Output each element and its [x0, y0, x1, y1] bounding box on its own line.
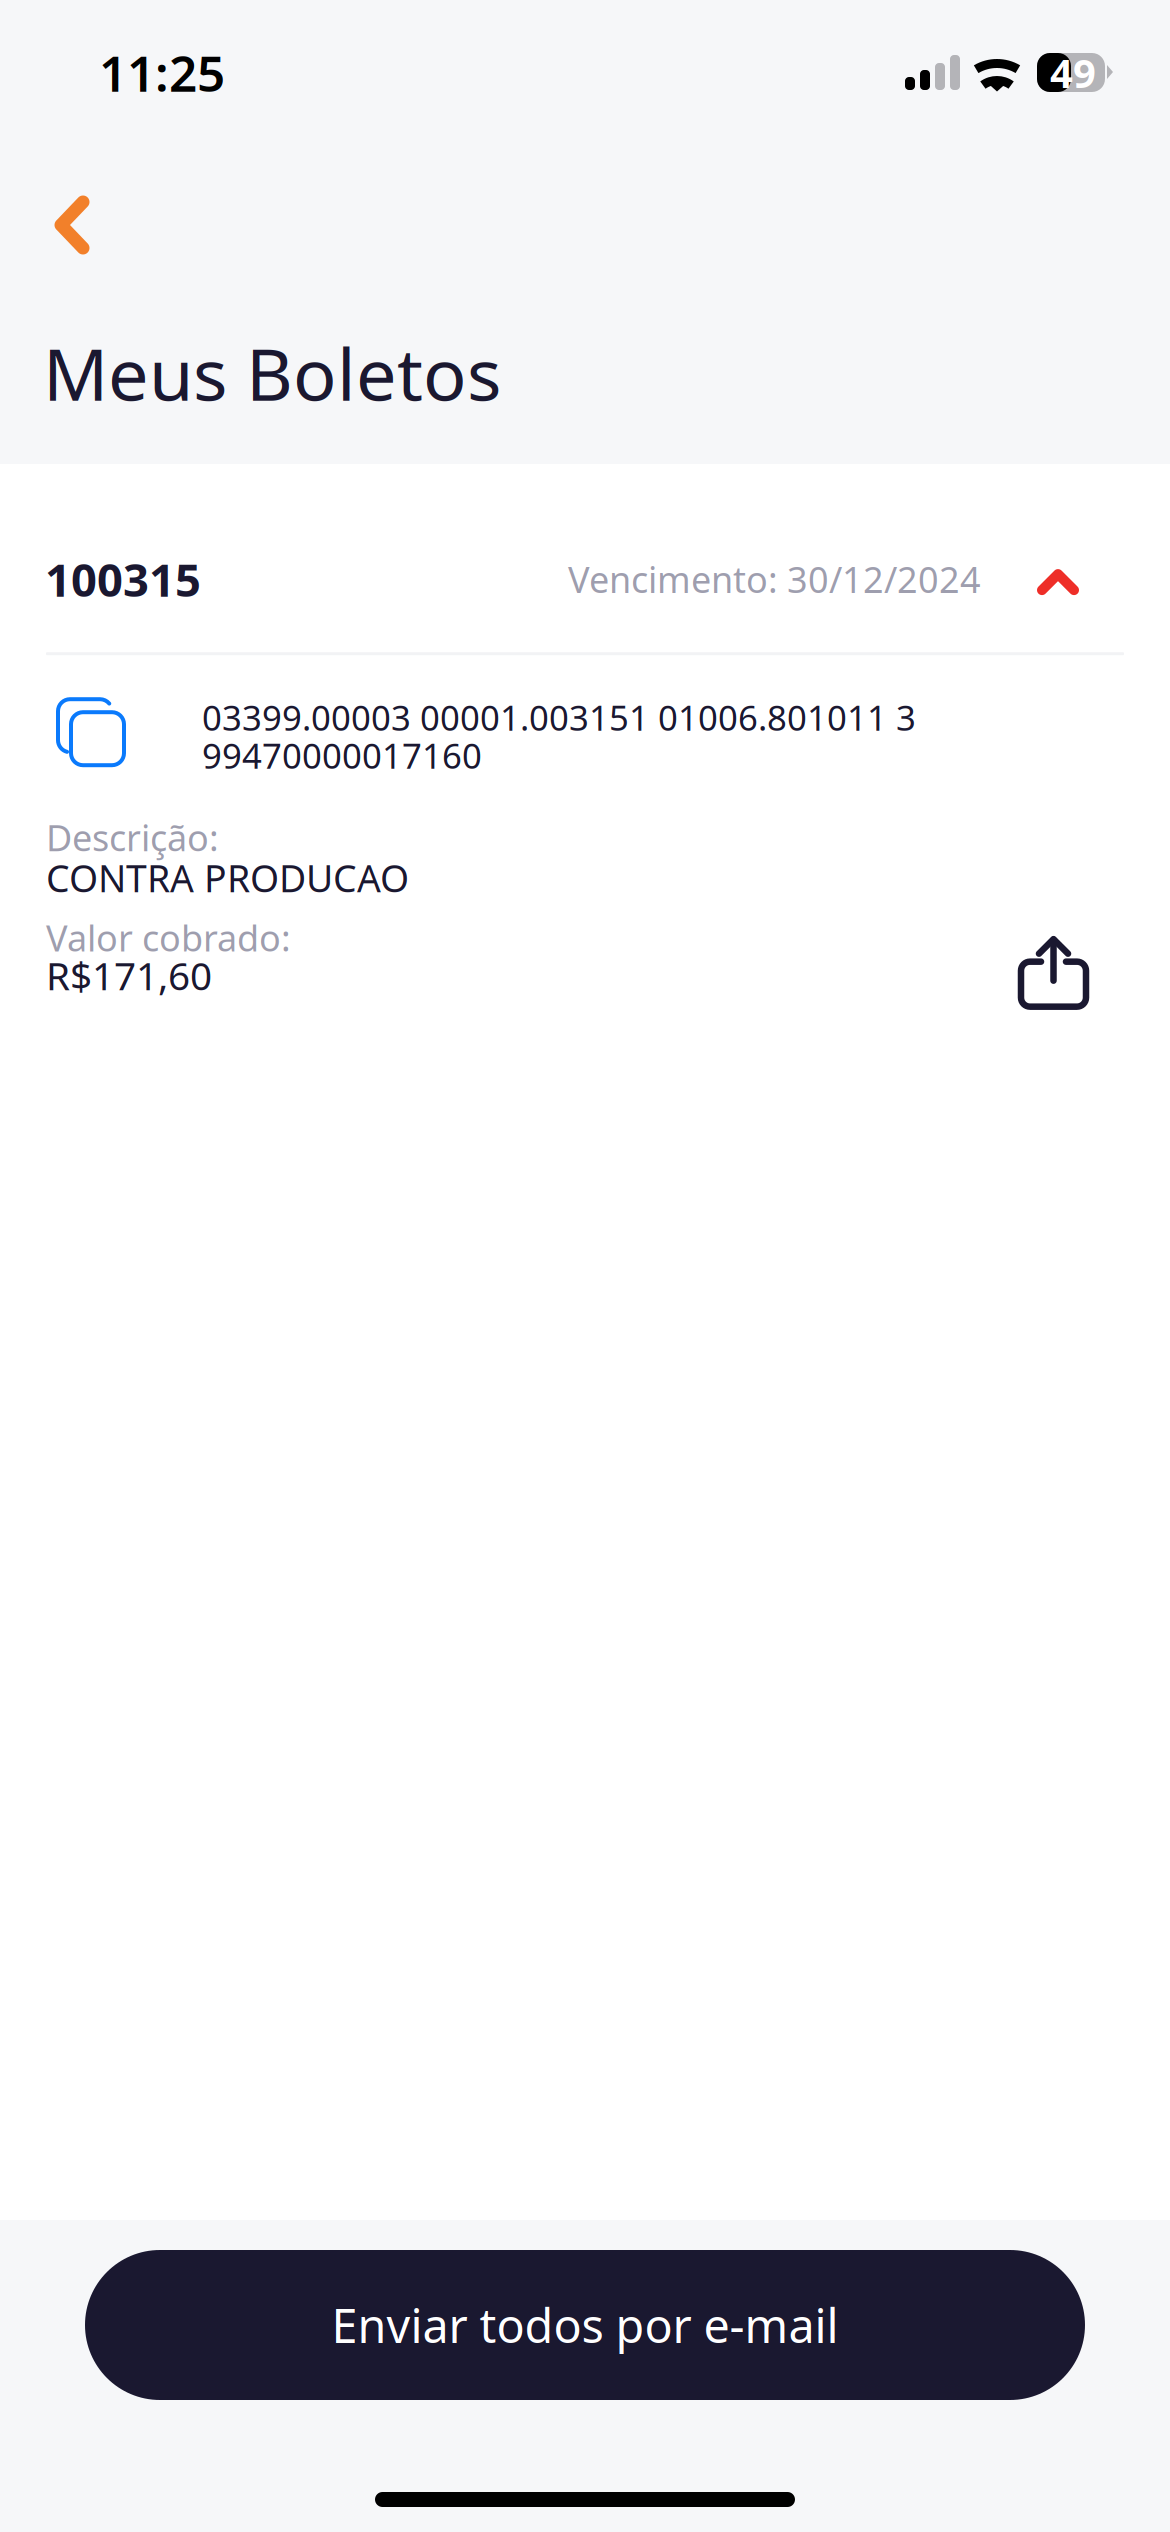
- staticText: 03399.00003 00001.003151 01006.801011 3: [202, 694, 916, 740]
- staticText: CONTRA PRODUCAO: [46, 853, 409, 903]
- staticText: Enviar todos por e-mail: [331, 2294, 838, 2356]
- button[interactable]: Voltar: [0, 187, 1170, 263]
- button[interactable]: Enviar todos por e-mail: [85, 2250, 1085, 2400]
- staticText: Valor cobrado:: [46, 914, 291, 961]
- staticText: 100315: [45, 549, 201, 609]
- staticText: Descrição:: [46, 813, 219, 861]
- staticText: 99470000017160: [202, 732, 482, 778]
- staticText: 11:25: [99, 40, 225, 105]
- staticText: Vencimento: 30/12/2024: [568, 555, 981, 603]
- button[interactable]: Compartilhar: [1016, 932, 1096, 1012]
- button[interactable]: 100315: [0, 464, 1170, 649]
- staticText: R$171,60: [46, 949, 212, 1001]
- staticText: Meus Boletos: [43, 325, 501, 421]
- staticText: 49: [1050, 46, 1096, 99]
- button[interactable]: Copiar código de barras: [48, 689, 128, 769]
